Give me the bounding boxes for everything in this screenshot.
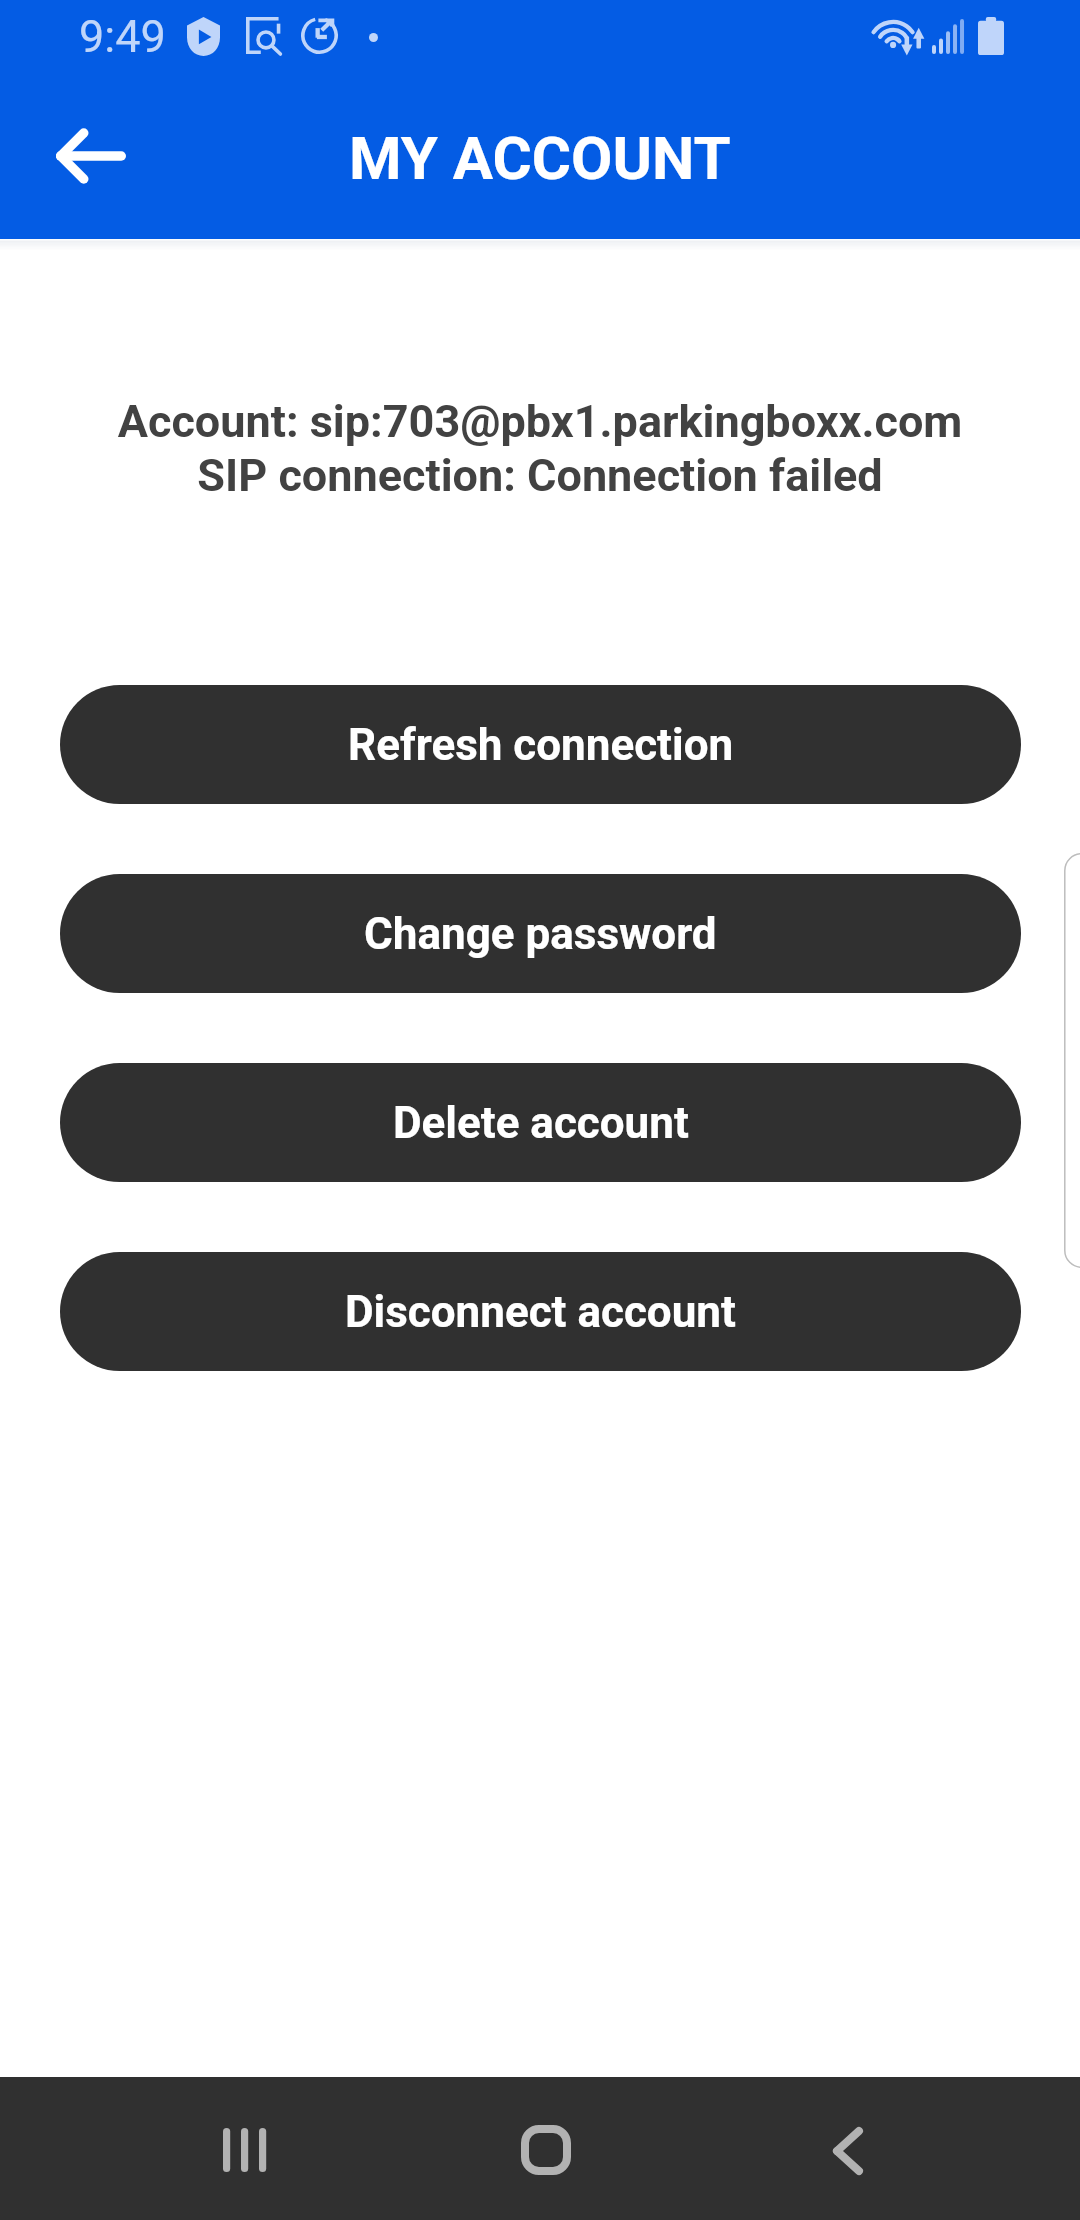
button[interactable]: Change password (60, 874, 1021, 993)
staticText: Refresh connection (348, 719, 734, 771)
staticText: Account: sip:703@pbx1.parkingboxx.com SI… (0, 395, 1080, 502)
staticText: Change password (364, 908, 717, 960)
button[interactable]: Disconnect account (60, 1252, 1021, 1371)
button[interactable]: Recent apps (183, 2088, 307, 2212)
button[interactable]: Back (786, 2089, 910, 2213)
staticText: Disconnect account (345, 1286, 736, 1338)
button[interactable]: Refresh connection (60, 685, 1021, 804)
button[interactable]: Delete account (60, 1063, 1021, 1182)
staticText: Delete account (393, 1097, 689, 1149)
staticText: 9:49 (79, 10, 166, 63)
button[interactable]: Home (484, 2088, 608, 2212)
staticText: MY ACCOUNT (349, 123, 731, 193)
button[interactable]: Back (26, 91, 156, 221)
